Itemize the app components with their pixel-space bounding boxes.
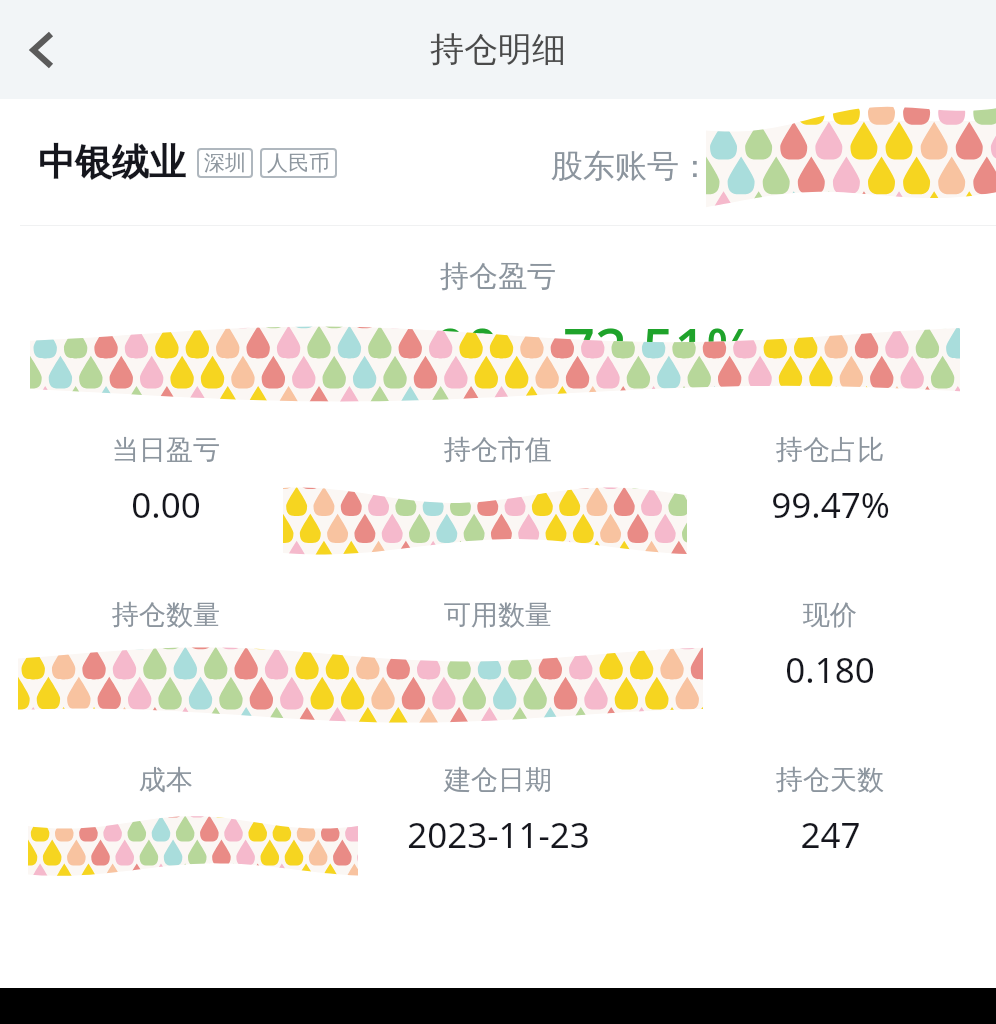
staticText: 持仓市值 xyxy=(332,433,664,467)
staticText: 持仓数量 xyxy=(0,598,332,632)
staticText: 中银绒业 xyxy=(38,139,186,186)
staticText: 现价 xyxy=(664,598,996,632)
staticText: 0.00 xyxy=(131,481,201,527)
staticText: 持仓明细 xyxy=(430,28,566,71)
staticText: 持仓天数 xyxy=(664,763,996,797)
button[interactable]: 现价 xyxy=(664,598,996,692)
staticText: 建仓日期 xyxy=(332,763,664,797)
button[interactable]: 当日盈亏 xyxy=(0,433,332,527)
button[interactable]: Back xyxy=(0,7,86,93)
staticText: 持仓占比 xyxy=(664,433,996,467)
staticText: 99.47% xyxy=(771,481,890,527)
staticText: 0.180 xyxy=(785,646,875,692)
staticText: -72.51% xyxy=(545,309,755,385)
staticText: 持仓盈亏 xyxy=(0,258,996,295)
staticText: 当日盈亏 xyxy=(0,433,332,467)
button[interactable]: 持仓数量 xyxy=(0,598,332,692)
button[interactable]: 持仓市值 xyxy=(332,433,664,527)
staticText: -36224.00 xyxy=(241,309,499,385)
staticText: 2023-11-23 xyxy=(407,811,590,857)
staticText: 247 xyxy=(800,811,861,857)
staticText: 股东账号：0310 xyxy=(551,143,785,187)
staticText: 成本 xyxy=(0,763,332,797)
button[interactable]: 持仓占比 xyxy=(664,433,996,527)
button[interactable]: 成本 xyxy=(0,763,332,857)
button[interactable]: 持仓天数 xyxy=(664,763,996,857)
staticText: 深圳 xyxy=(204,150,246,176)
staticText: 人民币 xyxy=(267,150,330,176)
button[interactable]: 可用数量 xyxy=(332,598,664,692)
button[interactable]: 建仓日期 xyxy=(332,763,664,857)
staticText: 可用数量 xyxy=(332,598,664,632)
